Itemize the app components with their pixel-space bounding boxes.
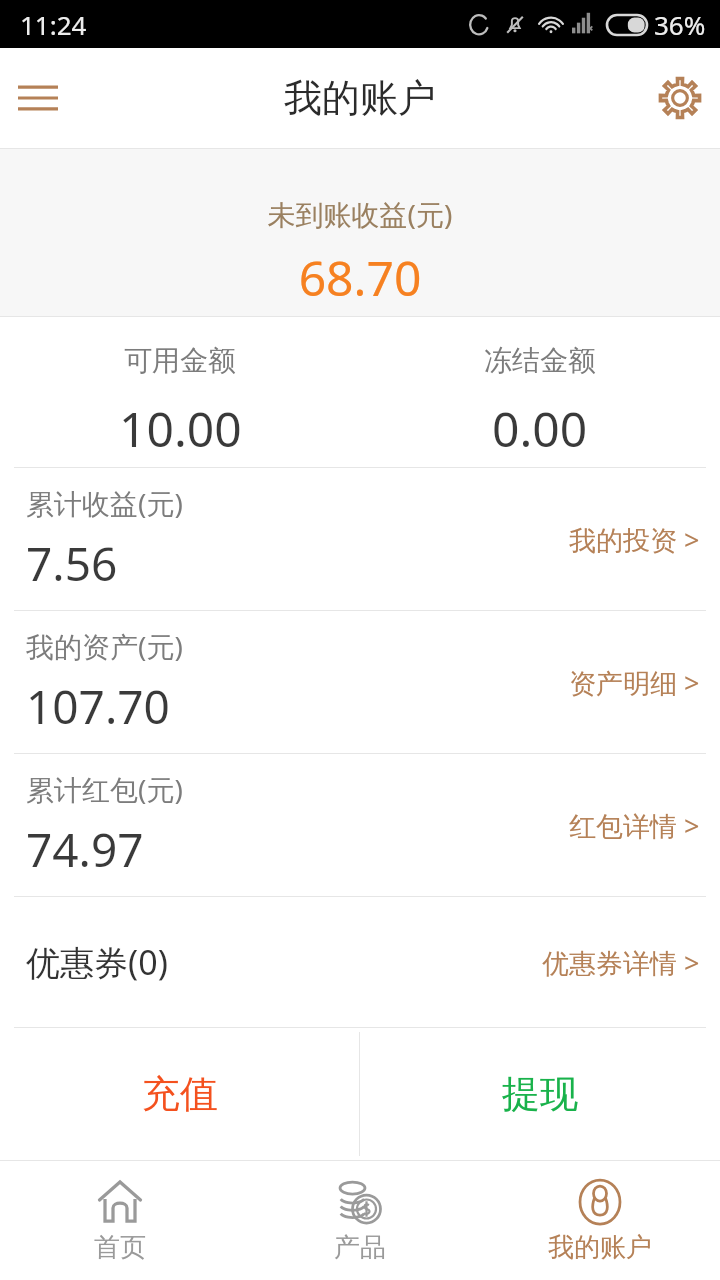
button[interactable]: 优惠券(0) bbox=[0, 897, 720, 1027]
staticText: 我的账户 bbox=[548, 1231, 652, 1264]
staticText: 资产明细 > bbox=[569, 664, 700, 701]
staticText: 107.70 bbox=[26, 675, 170, 738]
staticText: 提现 bbox=[502, 1070, 578, 1118]
staticText: 红包详情 > bbox=[569, 807, 700, 844]
button[interactable]: 我的资产(元) bbox=[0, 611, 720, 753]
button[interactable]: 累计收益(元) bbox=[0, 468, 720, 610]
staticText: 未到账收益(元) bbox=[0, 195, 720, 233]
staticText: 累计红包(元) bbox=[26, 770, 183, 808]
staticText: 累计收益(元) bbox=[26, 484, 183, 522]
staticText: 优惠券详情 > bbox=[542, 944, 700, 981]
button[interactable]: 充值 bbox=[0, 1028, 359, 1160]
staticText: 首页 bbox=[94, 1231, 146, 1264]
staticText: 产品 bbox=[334, 1231, 386, 1264]
button[interactable]: 我的账户 bbox=[480, 1160, 720, 1280]
staticText: 我的投资 > bbox=[569, 521, 700, 558]
staticText: 我的账户 bbox=[284, 74, 436, 122]
button[interactable]: 产品 bbox=[240, 1160, 480, 1280]
staticText: 我的资产(元) bbox=[26, 627, 183, 665]
staticText: 7.56 bbox=[26, 532, 118, 595]
staticText: 冻结金额 bbox=[484, 343, 596, 378]
staticText: 充值 bbox=[142, 1070, 218, 1118]
button[interactable]: 首页 bbox=[0, 1160, 240, 1280]
button[interactable]: 提现 bbox=[360, 1028, 720, 1160]
staticText: 11:24 bbox=[20, 7, 87, 42]
button[interactable]: Settings bbox=[640, 58, 720, 138]
staticText: 10.00 bbox=[119, 396, 242, 461]
staticText: 0.00 bbox=[492, 396, 588, 461]
staticText: 优惠券(0) bbox=[26, 939, 168, 985]
button[interactable]: 累计红包(元) bbox=[0, 754, 720, 896]
button[interactable]: Menu bbox=[0, 60, 76, 136]
staticText: 68.70 bbox=[0, 245, 720, 310]
button[interactable]: 可用金额 bbox=[0, 317, 360, 467]
staticText: 36% bbox=[654, 7, 706, 42]
staticText: 可用金额 bbox=[124, 343, 236, 378]
button[interactable]: 冻结金额 bbox=[360, 317, 720, 467]
staticText: 74.97 bbox=[26, 818, 144, 881]
